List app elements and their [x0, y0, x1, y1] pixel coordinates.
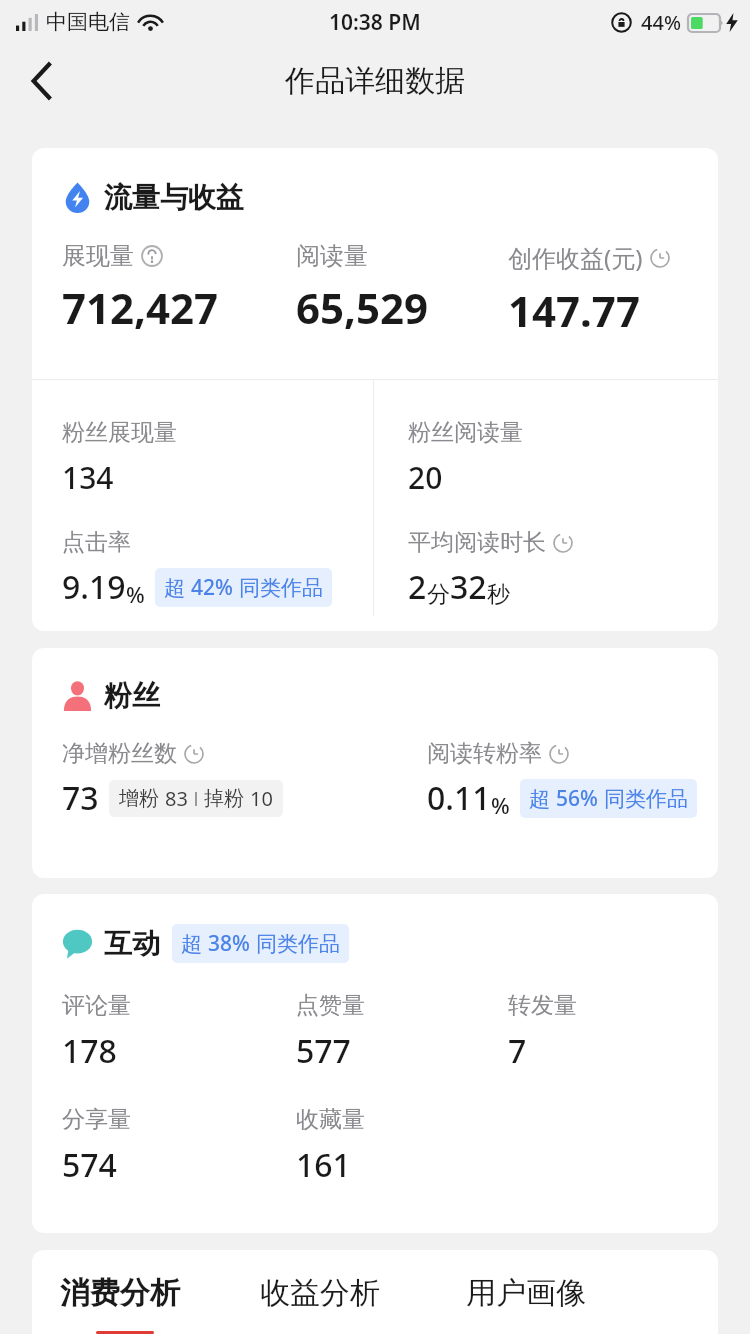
staticText: 互动: [104, 926, 160, 961]
staticText: 粉丝阅读量: [408, 418, 523, 447]
staticText: 83: [165, 785, 188, 812]
staticText: 同类作品: [604, 786, 688, 812]
staticText: 掉粉: [204, 786, 244, 811]
button[interactable]: 消费分析: [60, 1274, 260, 1334]
staticText: 评论量: [62, 991, 131, 1020]
staticText: 秒: [487, 580, 510, 609]
staticText: 消费分析: [60, 1274, 180, 1312]
staticText: 展现量: [62, 241, 134, 271]
staticText: 42%: [191, 573, 233, 602]
staticText: 712,427: [62, 279, 219, 336]
staticText: 收益分析: [260, 1274, 380, 1312]
staticText: 流量与收益: [104, 180, 244, 215]
staticText: 574: [62, 1143, 117, 1187]
staticText: 10: [250, 785, 273, 812]
staticText: 粉丝展现量: [62, 418, 177, 447]
staticText: 7: [508, 1029, 527, 1073]
staticText: 超: [181, 931, 202, 957]
button[interactable]: 用户画像: [466, 1274, 672, 1331]
staticText: 收藏量: [296, 1105, 365, 1134]
staticText: 分享量: [62, 1105, 131, 1134]
staticText: 147.77: [508, 282, 640, 339]
staticText: %: [491, 790, 510, 820]
staticText: 44%: [641, 9, 681, 36]
staticText: 超: [164, 575, 185, 601]
button[interactable]: 返回: [14, 53, 70, 109]
staticText: 32: [450, 565, 487, 609]
staticText: 同类作品: [239, 575, 323, 601]
staticText: 阅读转粉率: [427, 739, 542, 768]
staticText: 超: [529, 786, 550, 812]
staticText: %: [126, 579, 145, 609]
staticText: 9.19: [62, 565, 126, 609]
staticText: 阅读量: [296, 241, 368, 271]
staticText: 577: [296, 1029, 351, 1073]
staticText: 20: [408, 457, 443, 498]
staticText: 38%: [208, 929, 250, 958]
staticText: 用户画像: [466, 1274, 586, 1312]
staticText: 161: [296, 1143, 351, 1187]
staticText: 创作收益(元): [508, 241, 643, 274]
staticText: 点赞量: [296, 991, 365, 1020]
button[interactable]: 收益分析: [260, 1274, 466, 1331]
staticText: 10:38 PM: [329, 8, 421, 37]
staticText: 2: [408, 565, 427, 609]
staticText: 134: [62, 457, 114, 498]
staticText: 增粉: [119, 786, 159, 811]
staticText: 平均阅读时长: [408, 528, 546, 557]
staticText: 转发量: [508, 991, 577, 1020]
staticText: 点击率: [62, 528, 131, 557]
staticText: 同类作品: [256, 931, 340, 957]
staticText: 分: [427, 580, 450, 609]
staticText: 净增粉丝数: [62, 739, 177, 768]
staticText: 65,529: [296, 279, 429, 336]
staticText: 中国电信: [46, 9, 130, 35]
staticText: 作品详细数据: [285, 62, 465, 100]
staticText: 56%: [556, 784, 598, 813]
staticText: 178: [62, 1029, 117, 1073]
staticText: 0.11: [427, 776, 491, 820]
staticText: 73: [62, 776, 99, 820]
staticText: 粉丝: [104, 678, 160, 713]
